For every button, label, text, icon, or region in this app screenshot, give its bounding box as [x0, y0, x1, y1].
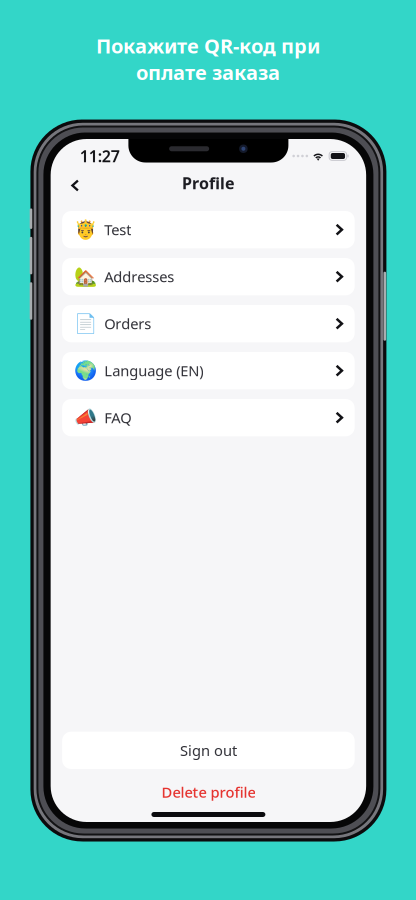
staticText: 11:27	[80, 145, 120, 167]
staticText: Orders	[104, 314, 151, 333]
button[interactable]: 📄	[62, 305, 355, 342]
staticText: Sign out	[180, 741, 237, 760]
staticText: Delete profile	[161, 782, 255, 802]
button[interactable]: Delete profile	[62, 782, 355, 802]
staticText: 🏡	[74, 266, 97, 287]
button[interactable]: 🤴	[62, 211, 355, 248]
staticText: Language (EN)	[104, 361, 203, 380]
button[interactable]: 📣	[62, 399, 355, 436]
staticText: 🌍	[74, 360, 97, 381]
staticText: Addresses	[104, 267, 174, 286]
staticText: 📣	[74, 407, 97, 428]
staticText: Profile	[182, 172, 235, 194]
staticText: оплате заказа	[136, 59, 280, 86]
button[interactable]: 🏡	[62, 258, 355, 295]
button[interactable]: 🌍	[62, 352, 355, 389]
staticText: Test	[104, 220, 131, 239]
staticText: 🤴	[74, 219, 97, 240]
button[interactable]: Back	[58, 165, 92, 200]
button[interactable]: Sign out	[62, 732, 355, 769]
staticText: Покажите QR-код при	[96, 32, 320, 59]
staticText: FAQ	[104, 408, 131, 427]
staticText: 📄	[74, 313, 97, 334]
